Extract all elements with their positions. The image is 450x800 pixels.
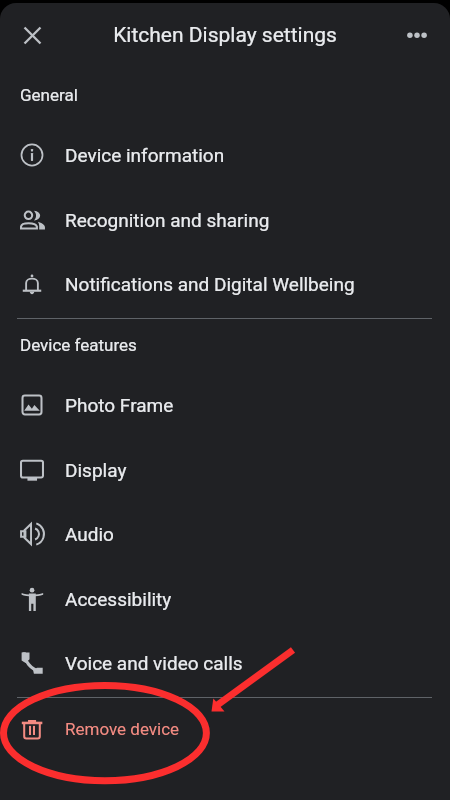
staticText: Remove device	[65, 719, 180, 739]
button[interactable]: Voice and video calls	[0, 631, 450, 695]
button[interactable]: Device information	[0, 123, 450, 187]
button[interactable]: Photo Frame	[0, 373, 450, 437]
staticText: Accessibility	[65, 588, 172, 610]
staticText: Photo Frame	[65, 394, 174, 416]
button[interactable]: Audio	[0, 502, 450, 566]
staticText: Kitchen Display settings	[0, 23, 450, 48]
staticText: Notifications and Digital Wellbeing	[65, 273, 355, 295]
staticText: Voice and video calls	[65, 652, 243, 674]
staticText: Device features	[20, 335, 137, 355]
button[interactable]: Recognition and sharing	[0, 188, 450, 252]
button[interactable]: Close	[9, 12, 55, 58]
button[interactable]: More options	[394, 12, 440, 58]
button[interactable]: Accessibility	[0, 567, 450, 631]
staticText: Audio	[65, 523, 114, 545]
staticText: Recognition and sharing	[65, 209, 270, 231]
staticText: Display	[65, 459, 127, 481]
staticText: Device information	[65, 144, 225, 166]
button[interactable]: Notifications and Digital Wellbeing	[0, 252, 450, 316]
button[interactable]: Remove device	[0, 697, 450, 761]
button[interactable]: Display	[0, 438, 450, 502]
staticText: General	[20, 85, 78, 105]
